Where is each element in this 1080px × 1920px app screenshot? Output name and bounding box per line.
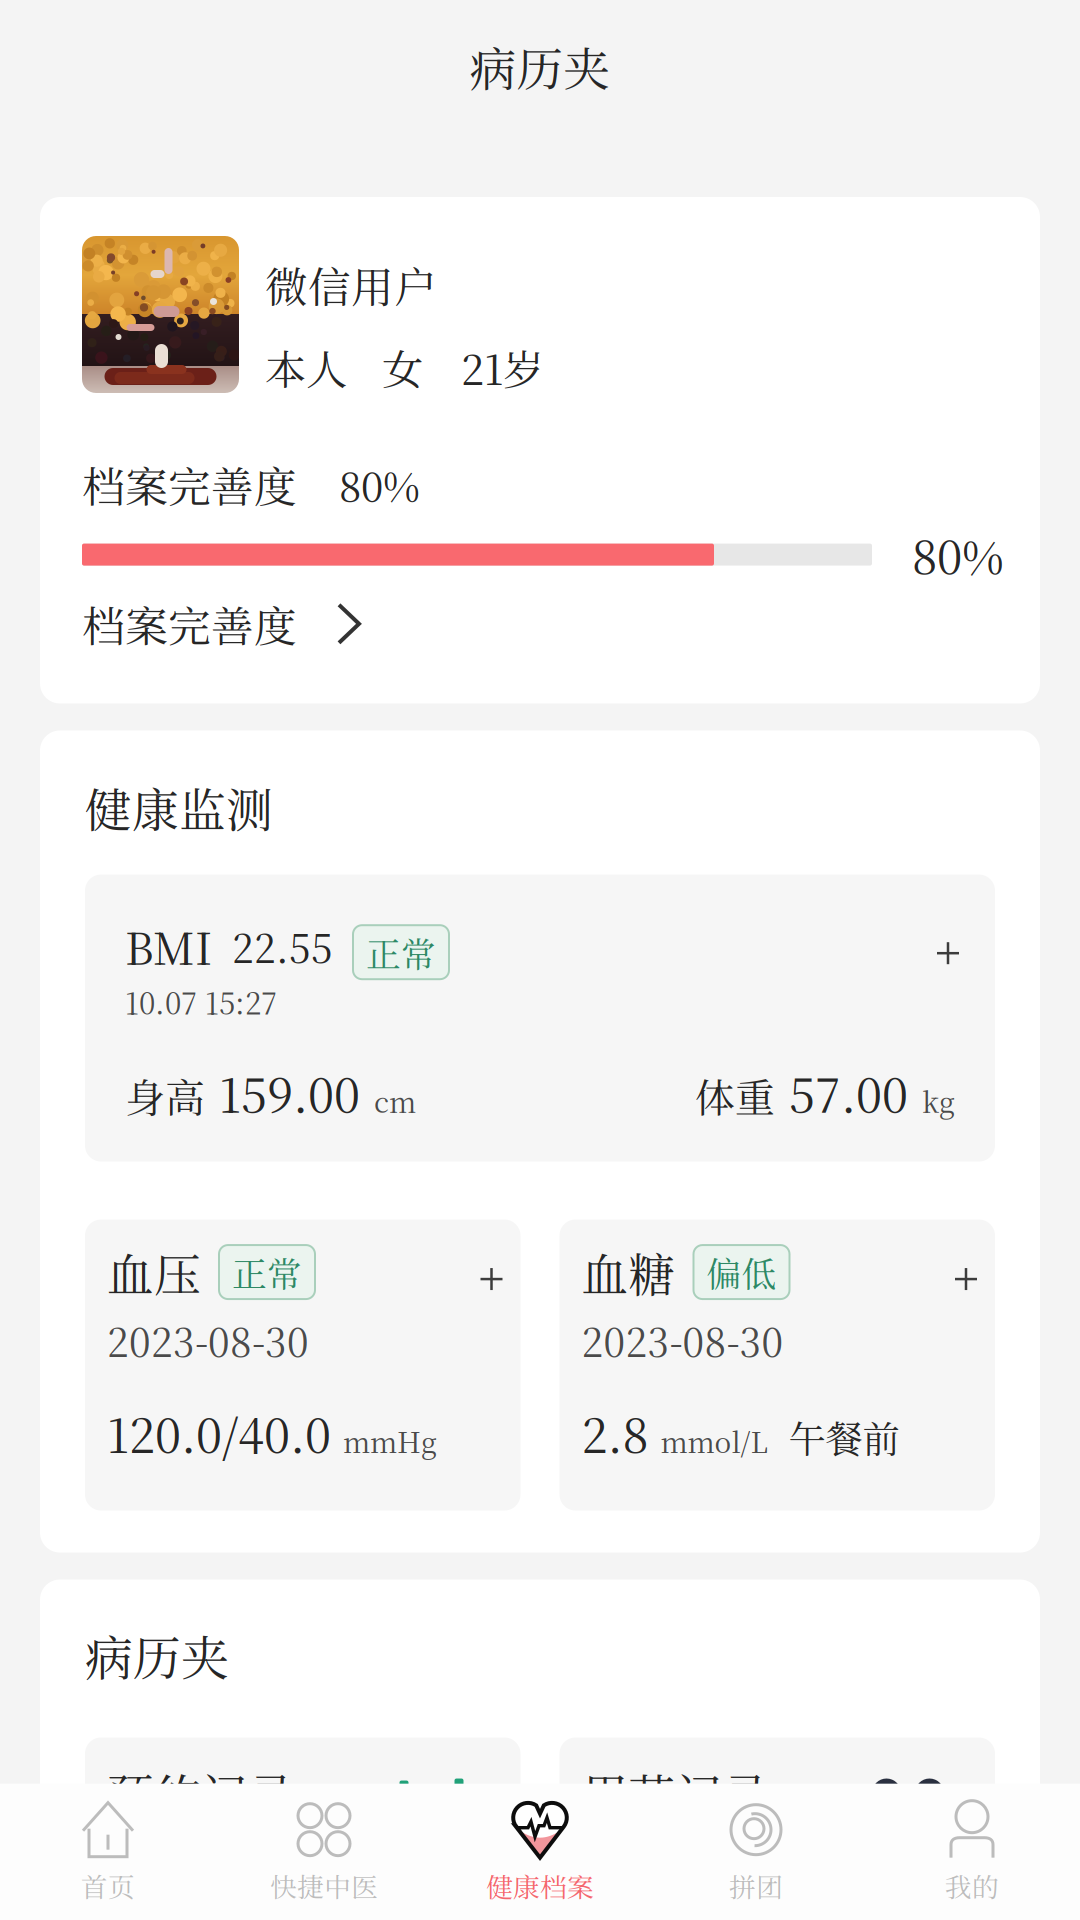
staticText: 偏低 [706, 1247, 776, 1297]
staticText: mmHg [343, 1421, 437, 1461]
staticText: 体重 [695, 1067, 775, 1124]
button[interactable]: 档案完善度 [82, 587, 998, 703]
staticText: 80% [912, 522, 1004, 587]
staticText: 身高 [125, 1067, 205, 1124]
staticText: kg [922, 1080, 955, 1121]
staticText: 正常 [232, 1247, 302, 1297]
staticText: 女 [382, 337, 423, 397]
staticText: 120.0/40.0 [107, 1399, 331, 1466]
staticText: 病历夹 [85, 1620, 229, 1689]
staticText: mmol/L [660, 1421, 768, 1461]
staticText: 2023-08-30 [107, 1313, 309, 1368]
staticText: 血糖 [581, 1238, 675, 1306]
staticText: 159.00 [219, 1059, 360, 1126]
staticText: 档案完善度 [82, 593, 297, 654]
staticText: 预约记录 [107, 1759, 295, 1827]
button[interactable]: Add record [462, 1247, 498, 1297]
staticText: 血压 [107, 1238, 201, 1306]
staticText: 正常 [366, 927, 436, 977]
button[interactable]: 用药记录 [559, 1737, 995, 1920]
staticText: 10.07 15:27 [125, 981, 277, 1023]
staticText: 健康监测 [85, 773, 273, 841]
staticText: 拼团 [729, 1867, 783, 1905]
staticText: 本人 [265, 337, 347, 397]
staticText: 22.55 [232, 918, 333, 974]
staticText: 2023-08-30 [581, 1313, 783, 1368]
staticText: 80% [339, 456, 420, 513]
staticText: 微信用户 [265, 254, 437, 315]
button[interactable]: 首页 [0, 1784, 216, 1920]
staticText: 快捷中医 [270, 1867, 378, 1905]
staticText: 我的 [945, 1867, 999, 1905]
staticText: 午餐前 [788, 1410, 899, 1463]
staticText: 病历夹 [469, 32, 610, 100]
staticText: 档案完善度 [82, 454, 297, 515]
button[interactable]: 预约记录 [85, 1737, 520, 1920]
staticText: 健康档案 [486, 1867, 594, 1905]
button[interactable]: Add record [919, 921, 955, 971]
button[interactable]: 健康档案 [432, 1784, 648, 1920]
button[interactable]: 快捷中医 [216, 1784, 432, 1920]
button[interactable]: Add record [937, 1247, 973, 1297]
button[interactable]: 拼团 [648, 1784, 864, 1920]
staticText: cm [374, 1080, 416, 1121]
staticText: 57.00 [789, 1059, 908, 1126]
staticText: 用药记录 [581, 1759, 769, 1827]
button[interactable]: 我的 [864, 1784, 1080, 1920]
staticText: 21岁 [461, 337, 544, 397]
staticText: 2.8 [581, 1399, 648, 1466]
staticText: BMI [125, 915, 212, 977]
staticText: 首页 [81, 1867, 135, 1905]
